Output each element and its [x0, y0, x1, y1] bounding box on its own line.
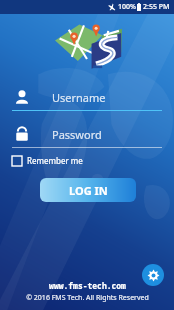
staticText: 100%	[118, 2, 136, 12]
staticText: © 2016 FMS Tech. All Rights Reserved	[26, 293, 149, 303]
staticText: Username	[52, 90, 106, 105]
staticText: Remember me	[27, 155, 83, 166]
button[interactable]: LOG IN	[40, 178, 136, 202]
button[interactable]: Settings	[142, 264, 164, 286]
button[interactable]: Remember me	[12, 155, 83, 166]
button[interactable]: Password	[0, 121, 174, 148]
staticText: 2:55 PM	[143, 2, 170, 12]
staticText: www.fms-tech.com	[49, 280, 126, 291]
staticText: LOG IN	[69, 183, 108, 198]
staticText: Password	[52, 127, 102, 142]
button[interactable]: Username	[0, 84, 174, 111]
